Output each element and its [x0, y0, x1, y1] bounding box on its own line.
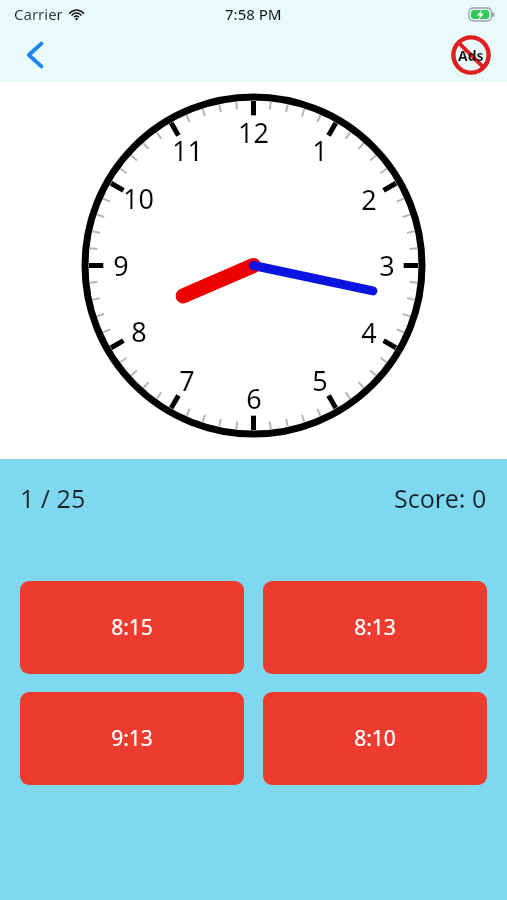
- button[interactable]: 8:15: [20, 581, 244, 674]
- button[interactable]: 9:13: [20, 692, 244, 785]
- staticText: 5: [312, 362, 328, 399]
- staticText: 8: [131, 313, 147, 350]
- staticText: 1: [312, 132, 328, 169]
- staticText: 1 / 25: [20, 481, 86, 515]
- staticText: 7:58 PM: [225, 4, 282, 24]
- button[interactable]: Remove ads: [449, 33, 493, 77]
- staticText: 8:15: [111, 613, 153, 642]
- staticText: Ads: [458, 46, 484, 65]
- staticText: 8:13: [354, 613, 396, 642]
- button[interactable]: 8:13: [263, 581, 487, 674]
- staticText: 12: [238, 114, 269, 151]
- staticText: 10: [123, 180, 154, 217]
- staticText: 2: [361, 181, 377, 218]
- staticText: 11: [172, 132, 203, 169]
- staticText: 9:13: [111, 724, 153, 753]
- staticText: Carrier: [14, 4, 63, 24]
- staticText: 4: [361, 314, 377, 351]
- staticText: 8:10: [354, 724, 396, 753]
- staticText: 3: [379, 247, 395, 284]
- staticText: 9: [113, 247, 129, 284]
- button[interactable]: 8:10: [263, 692, 487, 785]
- button[interactable]: Back: [16, 35, 56, 75]
- staticText: 7: [179, 362, 195, 399]
- staticText: 6: [246, 380, 262, 417]
- staticText: Score: 0: [394, 481, 487, 515]
